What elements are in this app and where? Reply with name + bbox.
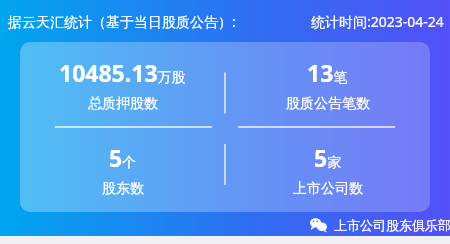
staticText: 股质公告笔数	[286, 95, 370, 113]
staticText: 据云天汇统计（基于当日股质公告）:	[8, 12, 236, 31]
button[interactable]: 10485.13万股	[20, 42, 225, 127]
button[interactable]: WeChat 上市公司股东俱乐部	[310, 215, 450, 235]
staticText: 上市公司股东俱乐部	[334, 217, 450, 233]
staticText: 13笔	[307, 57, 348, 88]
staticText: 上市公司数	[293, 180, 363, 198]
button[interactable]: 5个	[20, 127, 225, 212]
button[interactable]: 5家	[225, 127, 430, 212]
staticText: 5个	[109, 142, 137, 173]
staticText: 10485.13万股	[59, 57, 186, 88]
staticText: 总质押股数	[88, 95, 158, 113]
staticText: 统计时间:2023-04-24	[311, 12, 444, 31]
button[interactable]: 13笔	[225, 42, 430, 127]
staticText: 5家	[314, 142, 342, 173]
staticText: 股东数	[102, 180, 144, 198]
